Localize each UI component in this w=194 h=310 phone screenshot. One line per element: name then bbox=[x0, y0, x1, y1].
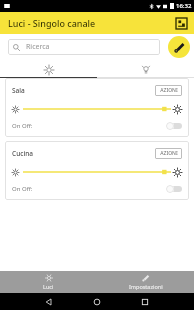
other: Back bbox=[45, 298, 53, 306]
button[interactable]: AZIONI bbox=[155, 148, 182, 159]
staticText: On Off: bbox=[12, 185, 166, 193]
button[interactable]: Impostazioni bbox=[168, 36, 190, 58]
button[interactable]: Luminosità bbox=[0, 62, 97, 77]
button[interactable]: On Off bbox=[166, 184, 182, 193]
button[interactable]: AZIONI bbox=[155, 85, 182, 96]
button[interactable]: Luci bbox=[0, 271, 97, 293]
button[interactable]: Scene bbox=[97, 62, 194, 77]
staticText: Luci - Singolo canale bbox=[8, 17, 96, 29]
staticText: On Off: bbox=[12, 122, 166, 130]
other: Recents bbox=[141, 298, 149, 306]
staticText: Sala bbox=[12, 86, 155, 95]
staticText: Cucina bbox=[12, 149, 155, 158]
staticText: 16:32 bbox=[176, 2, 192, 10]
staticText: Impostazioni bbox=[129, 283, 163, 290]
staticText: AZIONI bbox=[160, 87, 178, 94]
button[interactable]: On Off bbox=[166, 121, 182, 130]
staticText: Luci bbox=[43, 283, 54, 290]
button[interactable]: Cucina bbox=[5, 141, 189, 200]
staticText: Ricerca bbox=[26, 42, 50, 52]
staticText: AZIONI bbox=[160, 150, 178, 157]
button[interactable]: Impostazioni bbox=[97, 271, 194, 293]
other: Home bbox=[93, 298, 101, 306]
button[interactable]: Ricerca bbox=[8, 39, 160, 55]
button[interactable]: Sala bbox=[5, 78, 189, 137]
button[interactable]: Azioni bbox=[172, 14, 190, 32]
